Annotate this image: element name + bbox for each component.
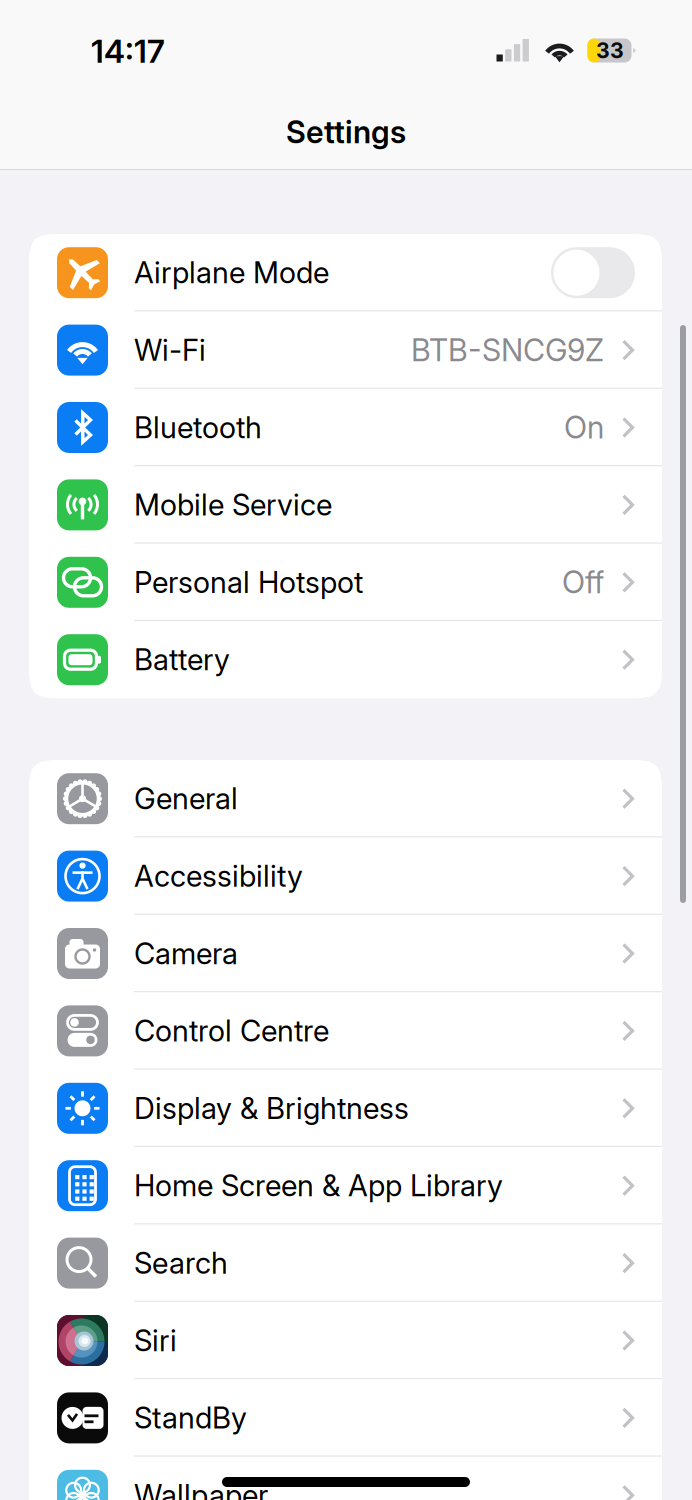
button[interactable]: Personal Hotspot	[29, 544, 662, 621]
staticText: BTB-SNCG9Z	[411, 332, 604, 368]
button[interactable]: Siri	[29, 1302, 662, 1379]
button[interactable]: Wallpaper	[29, 1457, 662, 1500]
button[interactable]: Home Screen & App Library	[29, 1147, 662, 1224]
staticText: Personal Hotspot	[134, 565, 363, 600]
button[interactable]: Wi-Fi	[29, 311, 662, 389]
staticText: Settings	[286, 113, 406, 150]
staticText: 33	[596, 38, 624, 63]
staticText: Control Centre	[134, 1013, 329, 1049]
staticText: Accessibility	[134, 858, 303, 894]
button[interactable]: Bluetooth	[29, 389, 662, 466]
staticText: Search	[134, 1245, 228, 1281]
staticText: Airplane Mode	[134, 255, 329, 290]
button[interactable]: Search	[29, 1224, 662, 1302]
button[interactable]: Airplane Mode	[29, 234, 662, 311]
staticText: Mobile Service	[134, 487, 332, 523]
staticText: Camera	[134, 936, 238, 971]
button[interactable]: Control Centre	[29, 992, 662, 1070]
staticText: Battery	[134, 642, 230, 677]
button[interactable]: Mobile Service	[29, 466, 662, 544]
button[interactable]: Display & Brightness	[29, 1070, 662, 1147]
staticText: Wallpaper	[134, 1478, 268, 1500]
staticText: General	[134, 781, 238, 816]
staticText: Bluetooth	[134, 410, 262, 445]
button[interactable]: Accessibility	[29, 837, 662, 915]
button[interactable]: StandBy	[29, 1379, 662, 1457]
staticText: Wi-Fi	[134, 332, 206, 368]
staticText: Home Screen & App Library	[134, 1168, 503, 1203]
staticText: Siri	[134, 1323, 177, 1358]
staticText: Off	[562, 564, 604, 601]
button[interactable]: Camera	[29, 915, 662, 992]
staticText: 14:17	[91, 32, 165, 70]
button[interactable]: General	[29, 760, 662, 837]
button[interactable]: Battery	[29, 621, 662, 698]
staticText: On	[564, 409, 604, 446]
staticText: Display & Brightness	[134, 1091, 409, 1126]
staticText: StandBy	[134, 1400, 247, 1436]
